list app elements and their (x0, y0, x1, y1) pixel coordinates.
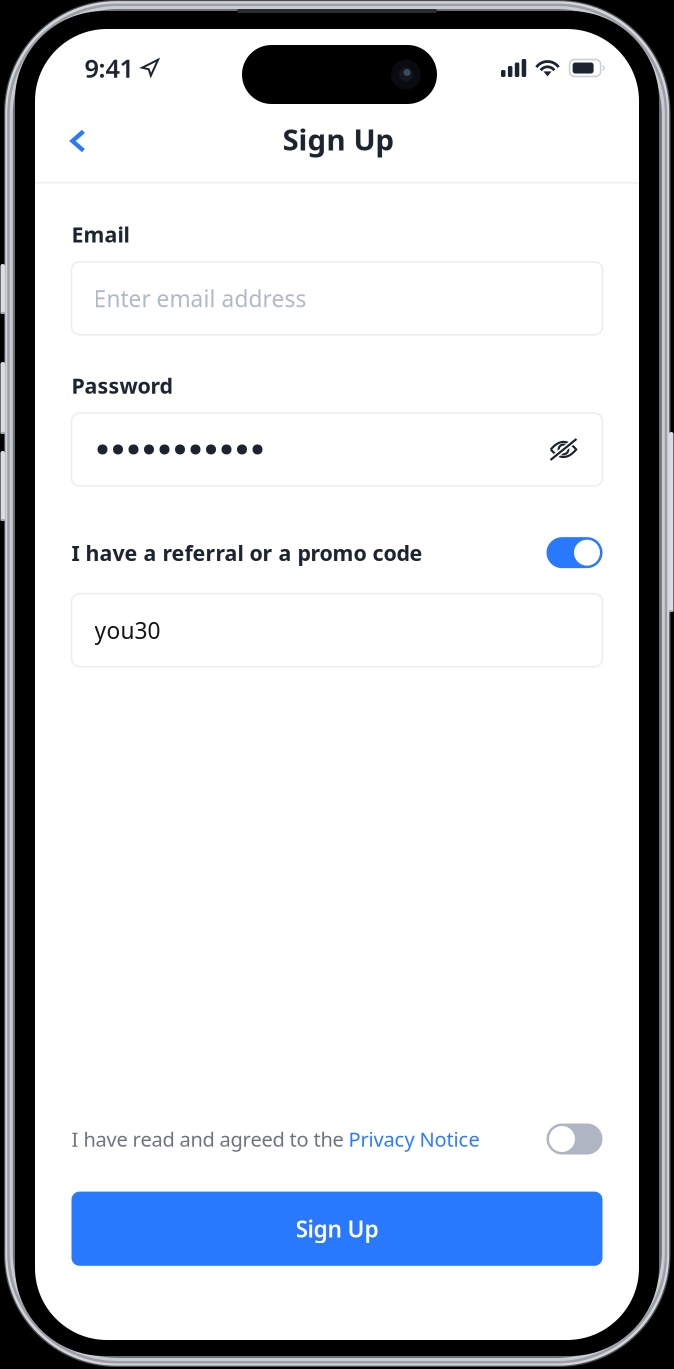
staticText: 9:41 (85, 51, 134, 85)
button[interactable]: Privacy Notice (348, 1126, 479, 1152)
button[interactable]: Agree to privacy notice (546, 1123, 602, 1154)
button[interactable] (71, 413, 602, 486)
staticText: you30 (94, 615, 160, 645)
staticText: Email (71, 220, 129, 248)
button[interactable]: Enter email address (71, 262, 602, 335)
staticText: Privacy Notice (348, 1126, 479, 1152)
staticText: I have read and agreed to the (71, 1126, 348, 1152)
staticText: I have a referral or a promo code (71, 538, 422, 567)
staticText: Password (71, 371, 172, 400)
button[interactable]: Referral code enabled (546, 537, 602, 568)
staticText: Sign Up (295, 1214, 378, 1244)
staticText: Enter email address (93, 283, 306, 313)
staticText: Sign Up (282, 119, 394, 158)
button[interactable]: Back (52, 115, 104, 167)
button[interactable]: Sign Up (71, 1192, 602, 1266)
button[interactable]: you30 (71, 594, 602, 667)
